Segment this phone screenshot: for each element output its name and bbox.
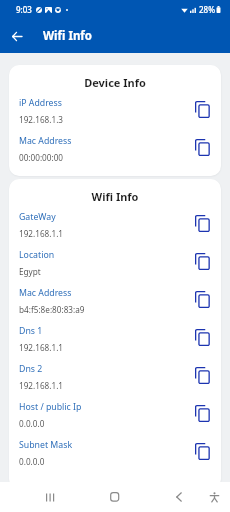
button[interactable]: Home xyxy=(95,482,135,512)
button[interactable]: Dns 1 xyxy=(19,325,212,353)
button[interactable]: Host / public Ip xyxy=(19,401,212,429)
button[interactable]: Copy Subnet Mask xyxy=(190,442,212,464)
button[interactable]: Back xyxy=(159,482,199,512)
staticText: Dns 2 xyxy=(19,363,43,375)
button[interactable]: Mac Address xyxy=(19,287,212,315)
staticText: Mac Address xyxy=(19,135,72,147)
staticText: 00:00:00:00 xyxy=(19,152,64,163)
staticText: iP Address xyxy=(19,97,62,109)
staticText: b4:f5:8e:80:83:a9 xyxy=(19,304,85,315)
staticText: 9:03 xyxy=(16,4,32,15)
button[interactable]: Copy GateWay xyxy=(190,214,212,236)
button[interactable]: Copy Mac Address xyxy=(190,290,212,312)
button[interactable]: Copy Host / public Ip xyxy=(190,404,212,426)
button[interactable]: Copy iP Address xyxy=(190,100,212,122)
staticText: Egypt xyxy=(19,266,41,277)
button[interactable]: Copy Dns 2 xyxy=(190,366,212,388)
staticText: Wifi Info xyxy=(9,189,221,204)
staticText: 192.168.1.1 xyxy=(19,228,64,239)
button[interactable]: Location xyxy=(19,249,212,277)
button[interactable]: Dns 2 xyxy=(19,363,212,391)
staticText: 0.0.0.0 xyxy=(19,456,45,467)
staticText: Dns 1 xyxy=(19,325,43,337)
button[interactable]: Recent apps xyxy=(30,482,71,512)
button[interactable]: Copy Mac Address xyxy=(190,138,212,160)
staticText: Mac Address xyxy=(19,287,72,299)
staticText: Subnet Mask xyxy=(19,439,73,451)
staticText: 0.0.0.0 xyxy=(19,418,45,429)
staticText: GateWay xyxy=(19,211,56,223)
button[interactable]: Subnet Mask xyxy=(19,439,212,467)
button[interactable]: Back xyxy=(0,19,34,53)
button[interactable]: GateWay xyxy=(19,211,212,239)
staticText: 28% xyxy=(199,4,215,15)
staticText: Wifi Info xyxy=(43,28,93,44)
button[interactable]: Mac Address xyxy=(19,135,212,163)
staticText: 192.168.1.1 xyxy=(19,380,64,391)
staticText: Location xyxy=(19,249,55,261)
button[interactable]: iP Address xyxy=(19,97,212,125)
button[interactable]: Copy Dns 1 xyxy=(190,328,212,350)
staticText: 192.168.1.3 xyxy=(19,114,64,125)
button[interactable]: Accessibility xyxy=(200,482,229,512)
staticText: Device Info xyxy=(9,75,221,90)
button[interactable]: Copy Location xyxy=(190,252,212,274)
staticText: Host / public Ip xyxy=(19,401,82,413)
staticText: 192.168.1.1 xyxy=(19,342,64,353)
